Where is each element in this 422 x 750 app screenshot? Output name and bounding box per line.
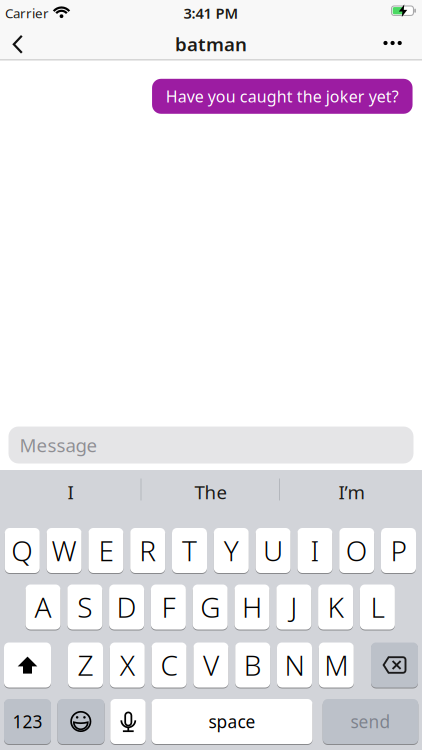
staticText: B <box>244 646 262 684</box>
staticText: I <box>310 532 319 569</box>
staticText: Carrier <box>5 4 49 22</box>
staticText: J <box>290 588 297 626</box>
staticText: send <box>350 710 390 733</box>
staticText: A <box>34 588 51 626</box>
staticText: 123 <box>12 710 42 733</box>
staticText: S <box>77 588 92 626</box>
staticText: H <box>242 588 262 626</box>
staticText: M <box>324 646 348 684</box>
staticText: T <box>182 532 197 569</box>
staticText: The <box>194 480 227 504</box>
staticText: I’m <box>338 480 364 504</box>
staticText: Have you caught the joker yet? <box>166 86 399 107</box>
staticText: Q <box>11 532 33 569</box>
staticText: R <box>139 532 156 569</box>
staticText: V <box>203 646 219 684</box>
staticText: Y <box>224 532 239 569</box>
staticText: K <box>328 588 344 626</box>
staticText: W <box>52 532 77 569</box>
staticText: X <box>120 646 135 684</box>
staticText: batman <box>175 32 247 56</box>
staticText: E <box>98 532 113 569</box>
staticText: O <box>346 532 368 569</box>
staticText: C <box>161 646 178 684</box>
staticText: G <box>200 588 220 626</box>
staticText: D <box>117 588 137 626</box>
staticText: U <box>263 532 283 569</box>
staticText: N <box>284 646 304 684</box>
staticText: space <box>208 710 255 733</box>
staticText: L <box>370 588 384 626</box>
staticText: I <box>67 480 73 504</box>
staticText: P <box>390 532 406 569</box>
staticText: Z <box>77 646 93 684</box>
staticText: F <box>161 588 175 626</box>
staticText: 3:41 PM <box>183 3 238 23</box>
staticText: Message <box>19 433 97 457</box>
